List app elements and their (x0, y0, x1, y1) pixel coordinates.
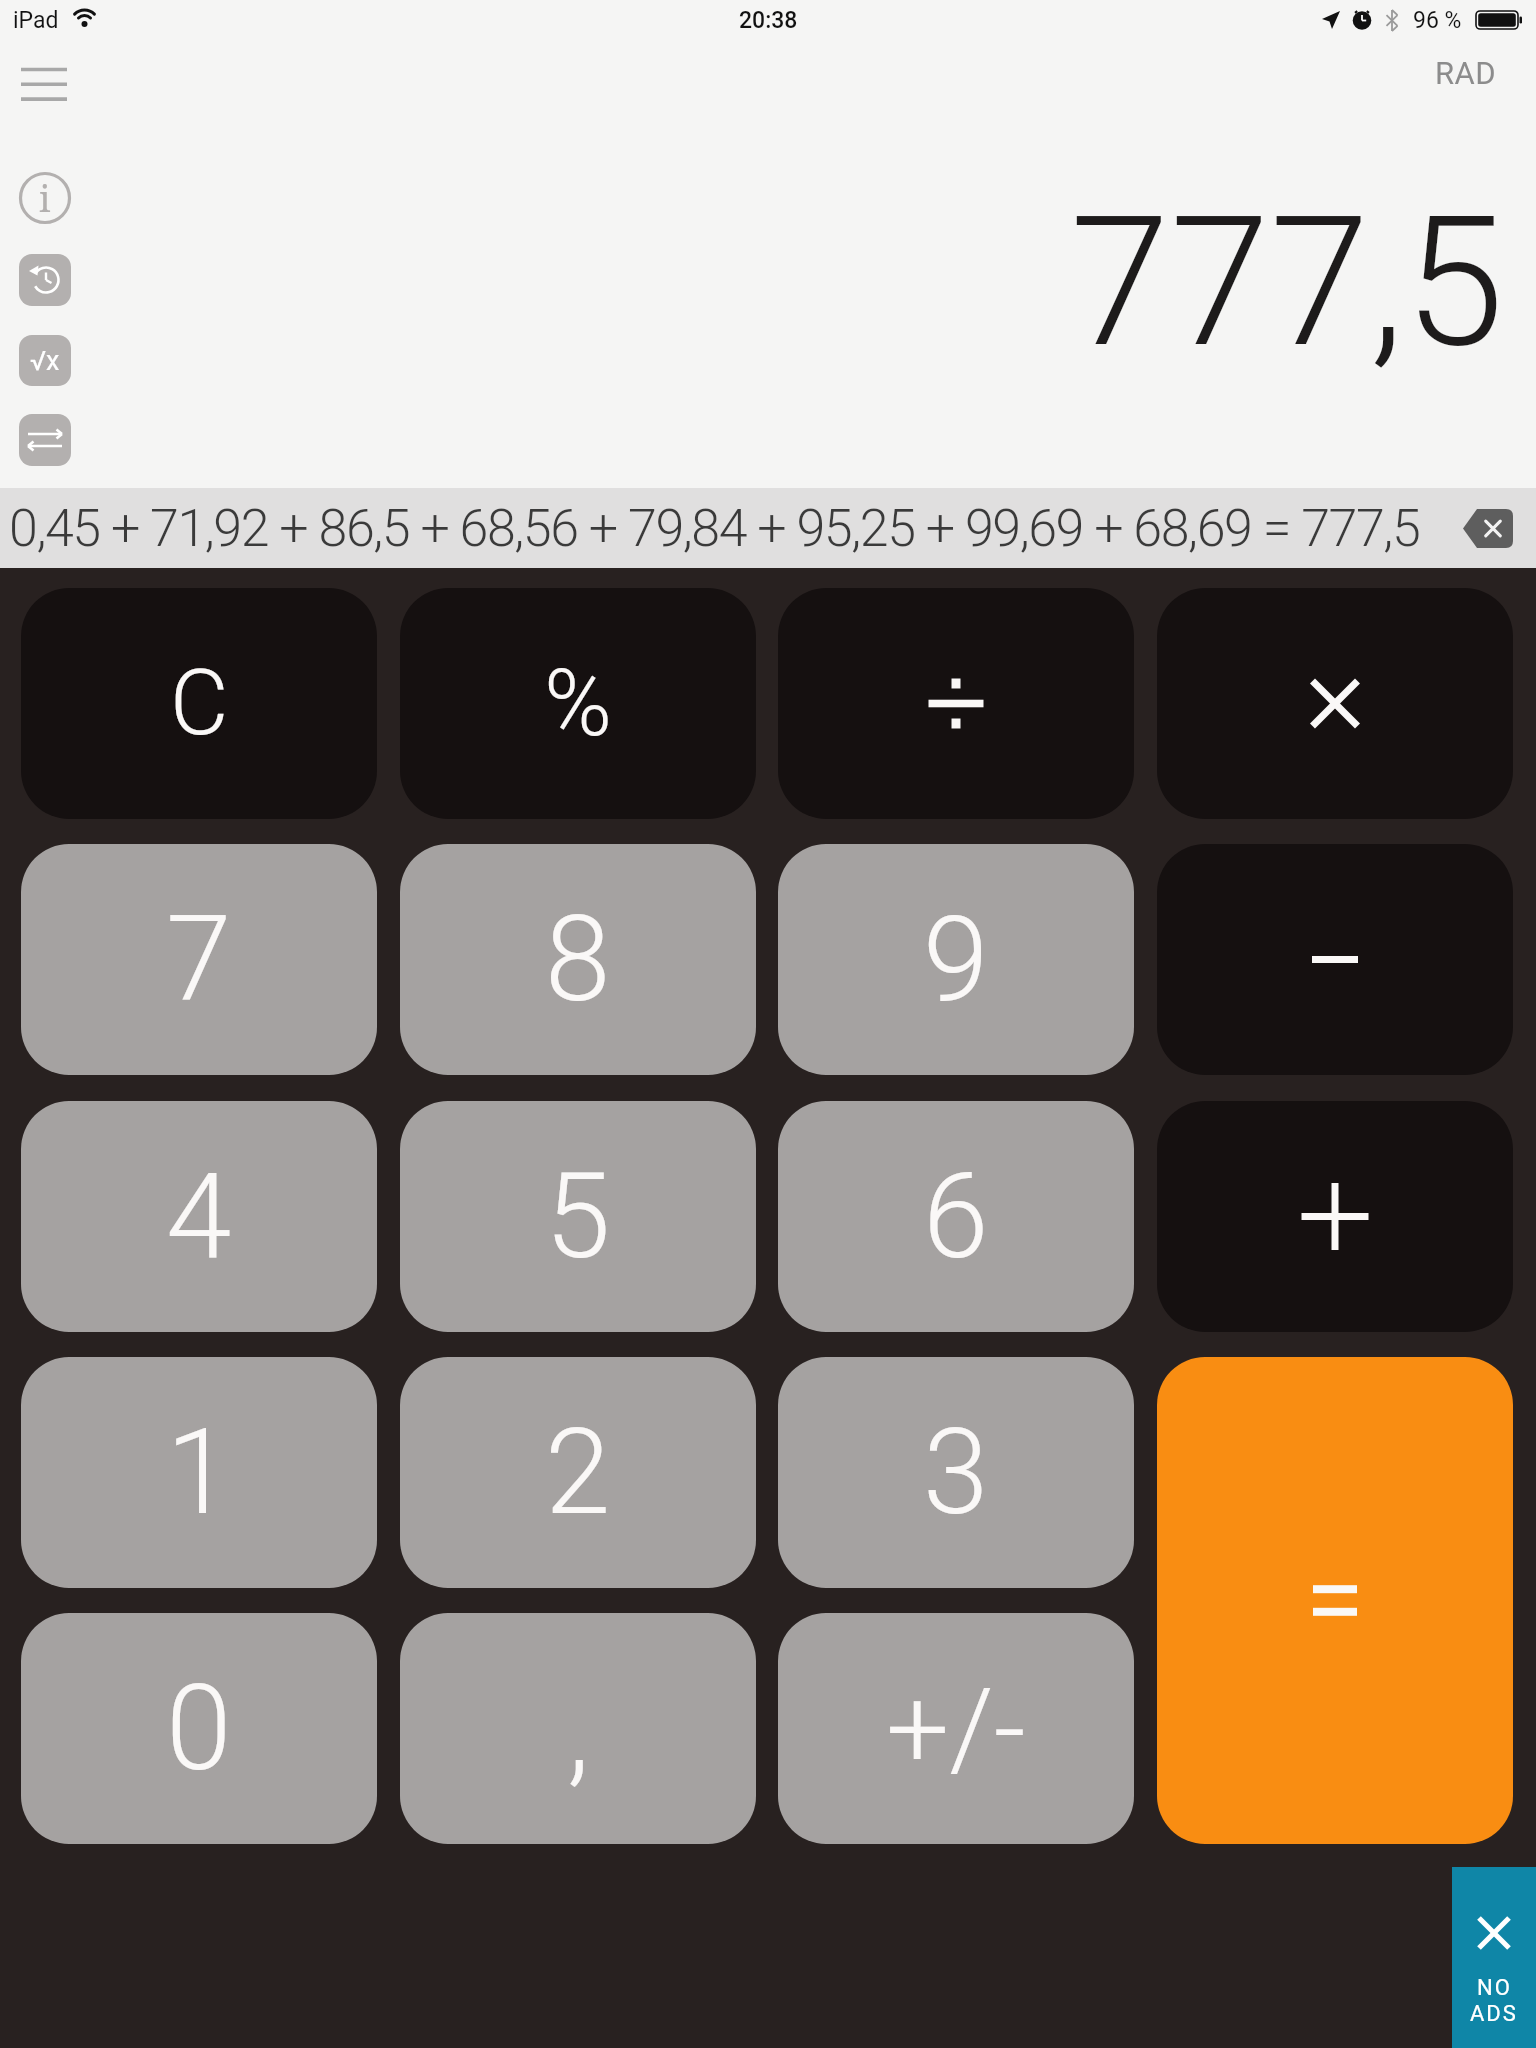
staticText: 8 (545, 891, 611, 1029)
staticText: 2 (545, 1404, 611, 1542)
staticText: ADS (1470, 2001, 1518, 2027)
button[interactable]: i (19, 172, 71, 224)
button[interactable] (1157, 588, 1513, 819)
button[interactable]: +/- (778, 1613, 1134, 1844)
button[interactable]: 0 (21, 1613, 377, 1844)
button[interactable] (778, 588, 1134, 819)
button[interactable]: NO (1452, 1867, 1536, 2048)
staticText: iPad (13, 7, 59, 34)
staticText: 96 % (1413, 7, 1462, 34)
staticText: 0 (166, 1660, 232, 1798)
staticText: √x (30, 345, 60, 377)
staticText: 777,5 (1070, 177, 1504, 377)
staticText: C (170, 651, 229, 756)
button[interactable]: C (21, 588, 377, 819)
staticText: 0,45 + 71,92 + 86,5 + 68,56 + 79,84 + 95… (9, 498, 1420, 559)
staticText: 6 (923, 1148, 989, 1286)
button[interactable]: 3 (778, 1357, 1134, 1588)
staticText: 20:38 (739, 7, 798, 34)
staticText: 4 (166, 1148, 232, 1286)
button[interactable] (21, 62, 67, 107)
button[interactable]: 9 (778, 844, 1134, 1075)
staticText: 3 (923, 1404, 989, 1542)
staticText: 7 (166, 891, 232, 1029)
button[interactable]: 1 (21, 1357, 377, 1588)
button[interactable]: 4 (21, 1101, 377, 1332)
button[interactable]: 5 (400, 1101, 756, 1332)
button[interactable] (1463, 509, 1513, 548)
staticText: % (544, 650, 613, 758)
button[interactable]: 7 (21, 844, 377, 1075)
staticText: 9 (923, 891, 989, 1029)
button[interactable] (19, 254, 71, 306)
staticText: 1 (166, 1404, 232, 1542)
staticText: i (39, 174, 51, 223)
staticText: RAD (1435, 55, 1497, 91)
button[interactable]: 8 (400, 844, 756, 1075)
button[interactable] (1157, 1101, 1513, 1332)
button[interactable] (1157, 844, 1513, 1075)
button[interactable]: % (400, 588, 756, 819)
staticText: NO (1477, 1975, 1512, 2001)
button[interactable]: 2 (400, 1357, 756, 1588)
button[interactable]: 6 (778, 1101, 1134, 1332)
button[interactable] (19, 414, 71, 466)
staticText: 5 (545, 1148, 611, 1286)
staticText: , (567, 1662, 590, 1800)
button[interactable]: √x (19, 335, 71, 386)
staticText: +/- (886, 1663, 1026, 1794)
button[interactable]: , (400, 1613, 756, 1844)
button[interactable] (1157, 1357, 1513, 1844)
